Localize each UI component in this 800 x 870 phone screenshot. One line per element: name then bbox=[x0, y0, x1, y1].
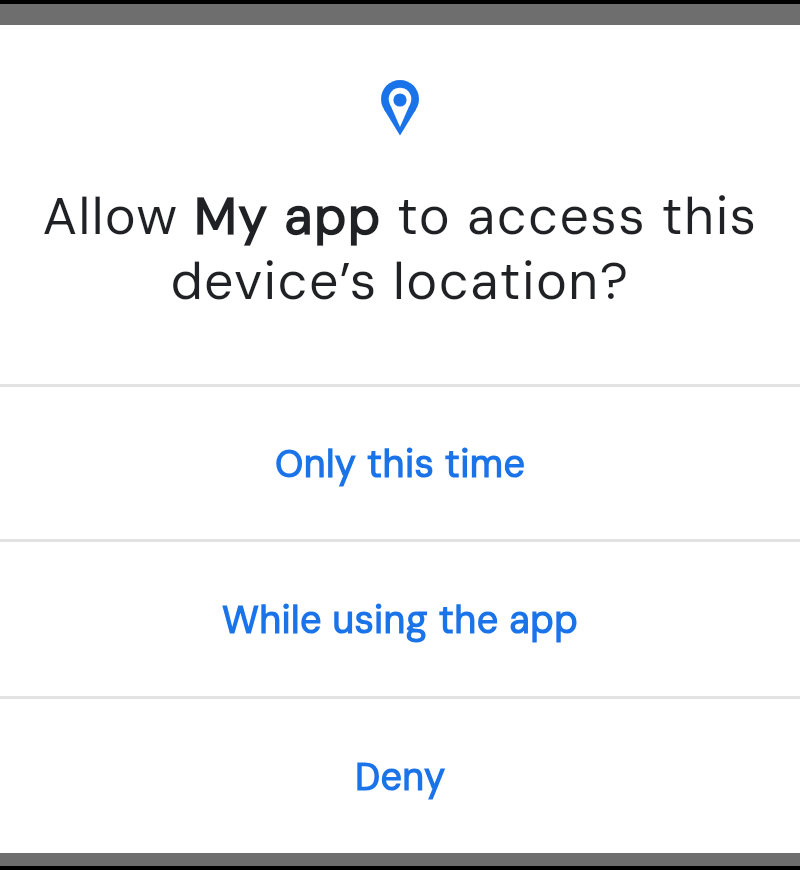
staticText: Only this time bbox=[275, 439, 526, 488]
staticText: While using the app bbox=[222, 595, 579, 644]
button[interactable]: While using the app bbox=[0, 542, 800, 696]
button[interactable]: Only this time bbox=[0, 387, 800, 539]
button[interactable]: Deny bbox=[0, 699, 800, 853]
staticText: Deny bbox=[355, 752, 446, 801]
staticText: Allow My app to access this device’s loc… bbox=[0, 182, 800, 315]
